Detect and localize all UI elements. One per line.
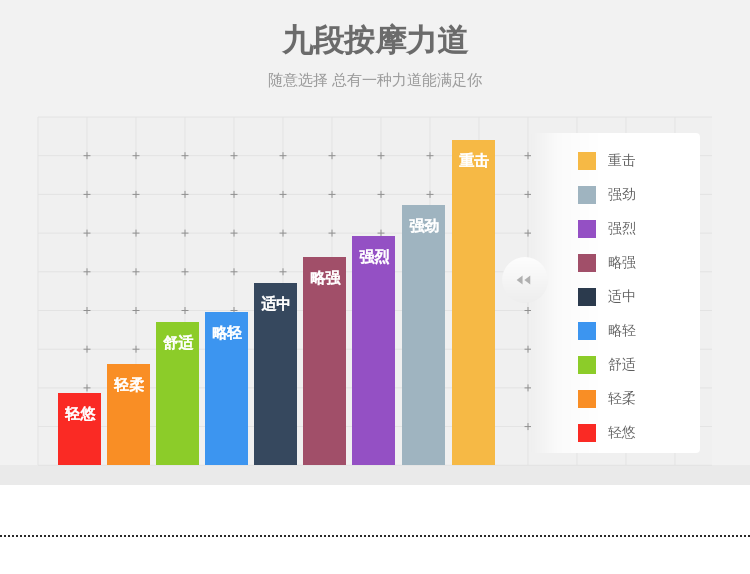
staticText: 略强 [310, 269, 340, 288]
staticText: 随意选择 总有一种力道能满足你 [268, 69, 482, 89]
button[interactable]: 适中 [578, 280, 690, 314]
button[interactable]: 强烈 [578, 212, 690, 246]
staticText: 强烈 [359, 248, 389, 267]
button[interactable]: 轻悠 [578, 416, 690, 450]
staticText: 九段按摩力道 [282, 21, 468, 60]
button[interactable]: 略轻 [578, 314, 690, 348]
button[interactable]: 强劲 [402, 213, 445, 239]
button[interactable]: 重击 [452, 148, 495, 174]
button[interactable]: 适中 [254, 291, 297, 317]
staticText: 舒适 [608, 356, 636, 374]
button[interactable]: 略强 [578, 246, 690, 280]
staticText: 强劲 [608, 186, 636, 204]
staticText: 舒适 [163, 334, 193, 353]
staticText: 重击 [608, 152, 636, 170]
button[interactable]: 强烈 [352, 244, 395, 270]
staticText: 适中 [261, 295, 291, 314]
staticText: 轻悠 [65, 405, 95, 424]
button[interactable]: 轻柔 [107, 372, 150, 398]
staticText: 略轻 [212, 324, 242, 343]
button[interactable]: 轻悠 [58, 401, 101, 427]
button[interactable]: 舒适 [156, 330, 199, 356]
staticText: 轻柔 [114, 376, 144, 395]
staticText: 轻悠 [608, 424, 636, 442]
staticText: 轻柔 [608, 390, 636, 408]
staticText: 略轻 [608, 322, 636, 340]
button[interactable]: 略轻 [205, 320, 248, 346]
staticText: 强劲 [409, 217, 439, 236]
button[interactable]: 重击 [578, 144, 690, 178]
staticText: 适中 [608, 288, 636, 306]
button[interactable]: 轻柔 [578, 382, 690, 416]
button[interactable]: 强劲 [578, 178, 690, 212]
staticText: 略强 [608, 254, 636, 272]
button[interactable]: 略强 [303, 265, 346, 291]
staticText: 重击 [459, 152, 489, 171]
button[interactable]: 舒适 [578, 348, 690, 382]
staticText: 强烈 [608, 220, 636, 238]
button[interactable]: Collapse legend [502, 257, 548, 303]
